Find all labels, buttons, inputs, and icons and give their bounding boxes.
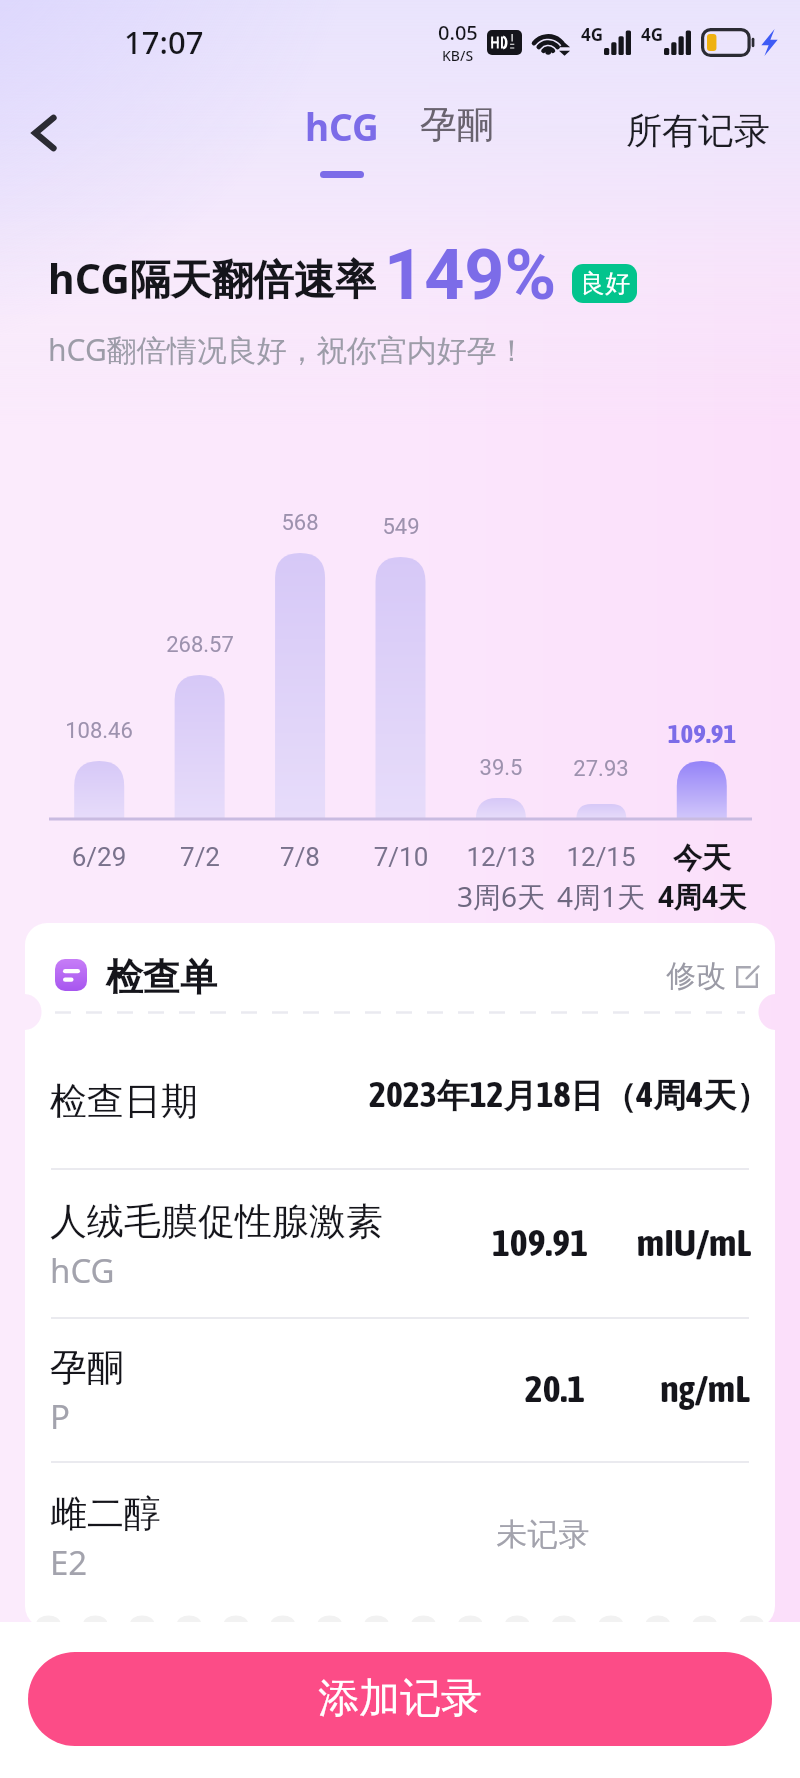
staticText: 17:07 [124,21,204,63]
staticText: 4周4天 [617,877,787,915]
staticText: 检查日期 [50,1078,198,1125]
staticText: 雌二醇 [50,1490,161,1537]
staticText: 孕酮 [50,1344,124,1391]
staticText: 4周1天 [516,877,686,915]
staticText: P [50,1394,70,1439]
staticText: 39.5 [416,755,586,781]
staticText: 添加记录 [318,1673,482,1725]
staticText: 568 [215,510,385,536]
staticText: ng/mL [575,1367,775,1411]
staticText: 4G [581,23,604,46]
staticText: 12/15 [516,842,686,872]
staticText: 12/13 [416,842,586,872]
staticText: 人绒毛膜促性腺激素 [50,1198,383,1245]
staticText: 0.05 [438,19,478,46]
staticText: hCG [305,101,379,151]
staticText: KB/S [442,46,474,65]
staticText: 7/8 [215,842,385,872]
staticText: hCG翻倍情况良好，祝你宫内好孕！ [48,329,527,370]
staticText: hCG隔天翻倍速率 [48,250,376,306]
button[interactable]: 所有记录 [626,108,770,153]
staticText: 孕酮 [420,101,494,148]
staticText: 108.46 [14,718,184,744]
staticText: 2023年12月18日（4周4天） [369,1073,770,1116]
staticText: mIU/mL [564,1221,775,1265]
staticText: 检查单 [106,954,217,1001]
staticText: 良好 [580,268,630,299]
staticText: 549 [316,514,486,540]
button[interactable]: 孕酮 [397,101,517,168]
staticText: 所有记录 [626,108,770,153]
staticText: 3周6天 [416,877,586,915]
button[interactable]: 修改 [666,957,758,995]
staticText: 109.91 [410,1221,670,1265]
staticText: 149% [384,234,557,316]
staticText: E2 [50,1540,88,1585]
staticText: 268.57 [115,632,285,658]
staticText: 20.1 [425,1367,685,1411]
staticText: 未记录 [413,1515,673,1554]
staticText: 109.91 [617,718,787,749]
staticText: 6/29 [14,842,184,872]
button[interactable]: 添加记录 [28,1652,772,1746]
staticText: 今天 [617,840,787,877]
staticText: 7/2 [115,842,285,872]
staticText: 4G [641,23,664,46]
button[interactable]: hCG [282,101,402,178]
staticText: hCG [50,1248,115,1293]
staticText: 7/10 [316,842,486,872]
staticText: 修改 [666,957,726,995]
button[interactable]: Back [16,104,74,162]
staticText: 27.93 [516,756,686,782]
